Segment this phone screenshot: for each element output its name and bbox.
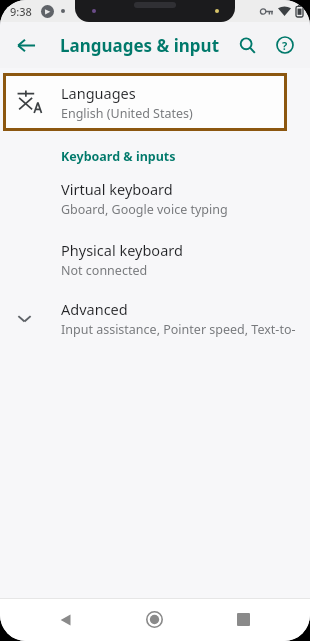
staticText: 9:38 bbox=[10, 4, 32, 19]
button[interactable]: Help bbox=[266, 26, 304, 64]
staticText: Input assistance, Pointer speed, Text-to… bbox=[61, 321, 304, 338]
button[interactable]: Recent apps bbox=[221, 598, 265, 641]
button[interactable]: Languages bbox=[3, 73, 287, 131]
staticText: Gboard, Google voice typing bbox=[61, 201, 228, 218]
staticText: Virtual keyboard bbox=[61, 179, 173, 199]
staticText: Languages bbox=[61, 83, 136, 103]
button[interactable]: Advanced bbox=[0, 299, 310, 338]
staticText: Physical keyboard bbox=[61, 240, 183, 260]
button[interactable]: Virtual keyboard bbox=[0, 177, 310, 220]
staticText: Not connected bbox=[61, 262, 148, 279]
button[interactable]: Search bbox=[228, 26, 266, 64]
button[interactable]: Back bbox=[44, 598, 88, 641]
staticText: Keyboard & inputs bbox=[61, 148, 176, 165]
button[interactable]: Physical keyboard bbox=[0, 238, 310, 281]
staticText: Advanced bbox=[61, 299, 128, 319]
staticText: English (United States) bbox=[61, 105, 193, 122]
button[interactable]: Home bbox=[132, 598, 176, 641]
staticText: Languages & input bbox=[60, 34, 220, 57]
button[interactable]: Back bbox=[6, 25, 46, 65]
staticText: ? bbox=[282, 38, 288, 53]
